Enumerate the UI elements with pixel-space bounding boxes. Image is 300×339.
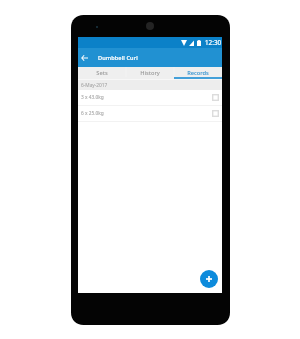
- button[interactable]: History: [126, 67, 174, 79]
- button[interactable]: Sets: [78, 67, 126, 79]
- staticText: Records: [187, 69, 209, 77]
- staticText: 12:30: [205, 38, 222, 47]
- staticText: History: [140, 69, 160, 77]
- button[interactable]: Records: [174, 67, 222, 79]
- button[interactable]: Select record: [212, 94, 219, 101]
- button[interactable]: Add record: [200, 270, 218, 288]
- button[interactable]: Select record: [212, 110, 219, 117]
- button[interactable]: 3 x 43.0kg: [78, 90, 222, 105]
- button[interactable]: 6 x 25.0kg: [78, 106, 222, 121]
- staticText: 6-May-2017: [81, 82, 108, 89]
- staticText: Sets: [96, 69, 108, 77]
- staticText: Dumbbell Curl: [98, 54, 138, 62]
- staticText: 3 x 43.0kg: [81, 94, 212, 101]
- button[interactable]: Back: [78, 51, 90, 65]
- staticText: 6 x 25.0kg: [81, 110, 212, 117]
